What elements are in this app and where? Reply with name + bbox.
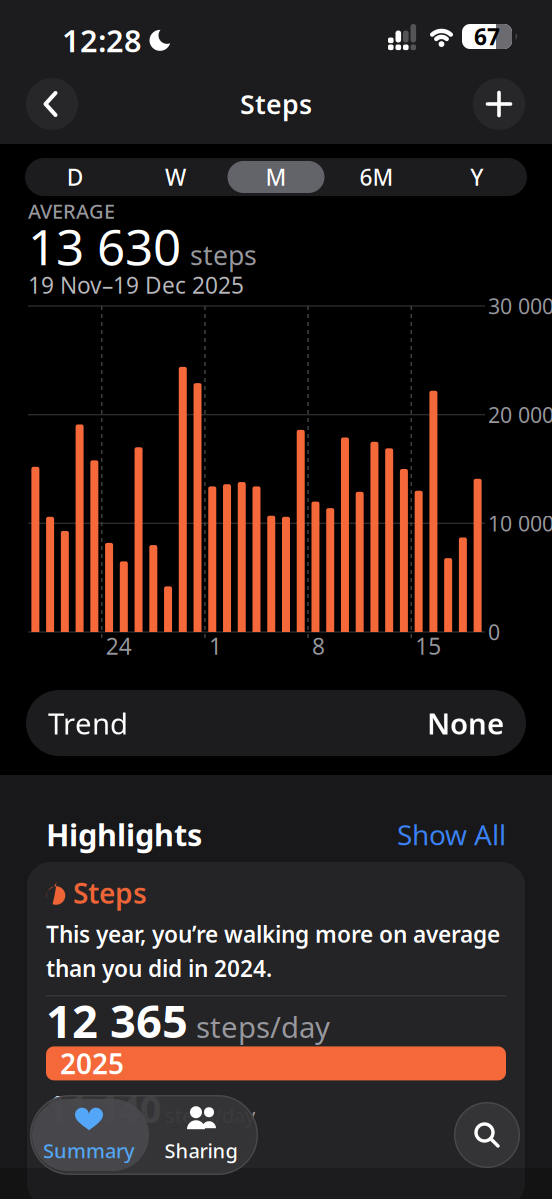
button[interactable]: M	[226, 158, 326, 196]
button[interactable]: Show All	[397, 816, 506, 853]
staticText: W	[165, 162, 186, 192]
button[interactable]: Steps	[27, 862, 525, 1199]
staticText: Steps	[240, 86, 312, 122]
staticText: 24	[106, 631, 132, 661]
staticText: Y	[470, 162, 483, 192]
staticText: 1	[209, 631, 222, 661]
staticText: Summary	[43, 1137, 135, 1164]
staticText: 8	[312, 631, 325, 661]
staticText: None	[427, 703, 504, 742]
staticText: Trend	[48, 703, 128, 742]
staticText: This year, you’re walking more on averag…	[46, 919, 500, 983]
staticText: 2025	[60, 1045, 124, 1082]
staticText: 13 630	[28, 213, 181, 279]
staticText: Sharing	[164, 1137, 237, 1164]
staticText: steps	[190, 237, 257, 272]
staticText: Show All	[397, 816, 506, 853]
button[interactable]: Back	[26, 78, 78, 130]
staticText: 30 000	[488, 292, 552, 320]
button[interactable]: D	[25, 158, 125, 196]
staticText: M	[265, 162, 286, 192]
staticText: 6M	[359, 162, 393, 192]
button[interactable]: W	[125, 158, 226, 196]
staticText: 20 000	[488, 400, 552, 429]
button[interactable]: Sharing	[148, 1095, 254, 1175]
button[interactable]: Y	[427, 158, 527, 196]
button[interactable]: Add Data	[473, 78, 525, 130]
button[interactable]: 6M	[326, 158, 427, 196]
staticText: AVERAGE	[28, 198, 115, 224]
staticText: steps/day	[196, 1007, 330, 1046]
staticText: 11 140	[46, 1084, 161, 1133]
staticText: 15	[415, 631, 441, 661]
button[interactable]: Search	[454, 1102, 520, 1168]
staticText: Highlights	[46, 814, 202, 855]
staticText: D	[67, 162, 84, 192]
staticText: 19 Nov–19 Dec 2025	[28, 270, 244, 300]
button[interactable]: Trend	[26, 690, 526, 756]
staticText: 12 365	[46, 990, 188, 1050]
staticText: 10 000	[488, 509, 552, 537]
staticText: 12:28	[62, 20, 142, 61]
button[interactable]: Summary	[30, 1095, 148, 1175]
staticText: 0	[488, 618, 500, 646]
staticText: 67	[474, 21, 500, 51]
staticText: Steps	[73, 874, 147, 912]
staticText: steps/day	[165, 1102, 255, 1128]
